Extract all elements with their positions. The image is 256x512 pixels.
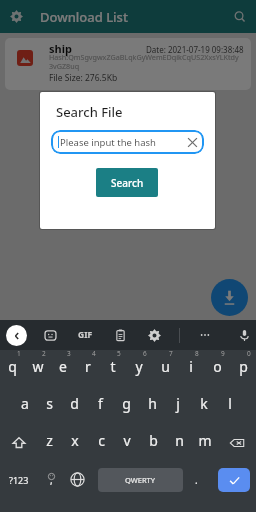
- staticText: ,: [50, 473, 53, 487]
- staticText: .: [195, 473, 198, 487]
- button[interactable]: Comma: [38, 461, 64, 498]
- button[interactable]: Keyboard settings: [143, 324, 165, 346]
- staticText: Search: [111, 176, 144, 190]
- staticText: k: [200, 394, 208, 413]
- staticText: 7: [169, 349, 173, 358]
- staticText: q: [8, 357, 17, 376]
- staticText: Hash:QmSgvgwxZGaBLqkGyWemEDqikCqUS2XxsYL…: [49, 52, 241, 71]
- button[interactable]: j: [165, 387, 191, 424]
- button[interactable]: c: [88, 424, 114, 461]
- button[interactable]: t: [100, 350, 126, 387]
- button[interactable]: s: [37, 387, 62, 424]
- staticText: ship: [49, 41, 72, 56]
- button[interactable]: Back: [6, 325, 27, 346]
- staticText: t: [110, 357, 116, 376]
- button[interactable]: Backspace: [218, 424, 256, 461]
- staticText: s: [46, 394, 53, 413]
- staticText: y: [135, 357, 143, 376]
- button[interactable]: Period: [183, 461, 209, 498]
- staticText: Date: 2021-07-19 09:38:48: [146, 44, 244, 55]
- staticText: File Size: 276.5Kb: [49, 72, 118, 84]
- staticText: 0: [247, 349, 251, 358]
- staticText: r: [85, 357, 91, 376]
- button[interactable]: d: [62, 387, 87, 424]
- button[interactable]: r: [75, 350, 100, 387]
- staticText: o: [213, 357, 222, 376]
- button[interactable]: u: [152, 350, 178, 387]
- button[interactable]: n: [166, 424, 192, 461]
- button[interactable]: More options: [194, 324, 216, 346]
- button[interactable]: z: [37, 424, 62, 461]
- staticText: d: [70, 394, 79, 413]
- button[interactable]: QWERTY: [98, 468, 183, 492]
- button[interactable]: m: [192, 424, 218, 461]
- button[interactable]: o: [204, 350, 230, 387]
- button[interactable]: Download: [211, 279, 248, 316]
- button[interactable]: Clipboard: [109, 324, 131, 346]
- button[interactable]: Search: [223, 0, 256, 33]
- button[interactable]: Stickers: [39, 324, 61, 346]
- button[interactable]: Search: [96, 168, 158, 197]
- staticText: g: [122, 394, 131, 413]
- staticText: 1: [17, 349, 21, 358]
- staticText: 4: [92, 349, 96, 358]
- button[interactable]: y: [126, 350, 152, 387]
- button[interactable]: Please input the hash: [51, 130, 204, 154]
- staticText: GIF: [78, 329, 93, 341]
- button[interactable]: Settings: [0, 0, 33, 33]
- button[interactable]: ?123: [0, 461, 38, 498]
- button[interactable]: l: [217, 387, 243, 424]
- button[interactable]: h: [139, 387, 165, 424]
- staticText: 6: [143, 349, 147, 358]
- button[interactable]: w: [25, 350, 50, 387]
- staticText: 2: [42, 349, 46, 358]
- button[interactable]: Shift: [0, 424, 37, 461]
- staticText: i: [189, 357, 193, 376]
- button[interactable]: Change language: [64, 461, 90, 498]
- staticText: z: [46, 431, 53, 450]
- button[interactable]: GIF: [73, 323, 97, 347]
- button[interactable]: x: [62, 424, 88, 461]
- staticText: u: [161, 357, 170, 376]
- button[interactable]: e: [50, 350, 75, 387]
- staticText: p: [239, 357, 248, 376]
- staticText: Please input the hash: [60, 136, 156, 149]
- staticText: j: [176, 394, 180, 413]
- button[interactable]: f: [87, 387, 113, 424]
- staticText: e: [59, 357, 67, 376]
- staticText: Search File: [56, 103, 123, 121]
- button[interactable]: g: [113, 387, 139, 424]
- button[interactable]: k: [191, 387, 217, 424]
- staticText: 3: [67, 349, 71, 358]
- button[interactable]: Clear: [182, 132, 202, 152]
- button[interactable]: b: [140, 424, 166, 461]
- staticText: ?123: [9, 474, 29, 486]
- button[interactable]: v: [114, 424, 140, 461]
- button[interactable]: i: [178, 350, 204, 387]
- button[interactable]: Enter: [218, 468, 250, 492]
- button[interactable]: Voice input: [233, 324, 255, 346]
- staticText: 8: [195, 349, 199, 358]
- staticText: QWERTY: [125, 475, 156, 485]
- staticText: f: [98, 394, 103, 413]
- staticText: n: [175, 431, 184, 450]
- staticText: l: [228, 394, 232, 413]
- button[interactable]: p: [230, 350, 256, 387]
- staticText: a: [21, 394, 29, 413]
- staticText: Download List: [40, 8, 128, 26]
- staticText: b: [149, 431, 158, 450]
- staticText: w: [32, 357, 44, 376]
- staticText: v: [123, 431, 131, 450]
- staticText: 5: [117, 349, 121, 358]
- staticText: x: [71, 431, 79, 450]
- staticText: m: [198, 431, 212, 450]
- staticText: h: [148, 394, 157, 413]
- button[interactable]: a: [12, 387, 37, 424]
- button[interactable]: ship: [5, 38, 251, 90]
- button[interactable]: q: [0, 350, 25, 387]
- staticText: c: [98, 431, 105, 450]
- staticText: 9: [221, 349, 225, 358]
